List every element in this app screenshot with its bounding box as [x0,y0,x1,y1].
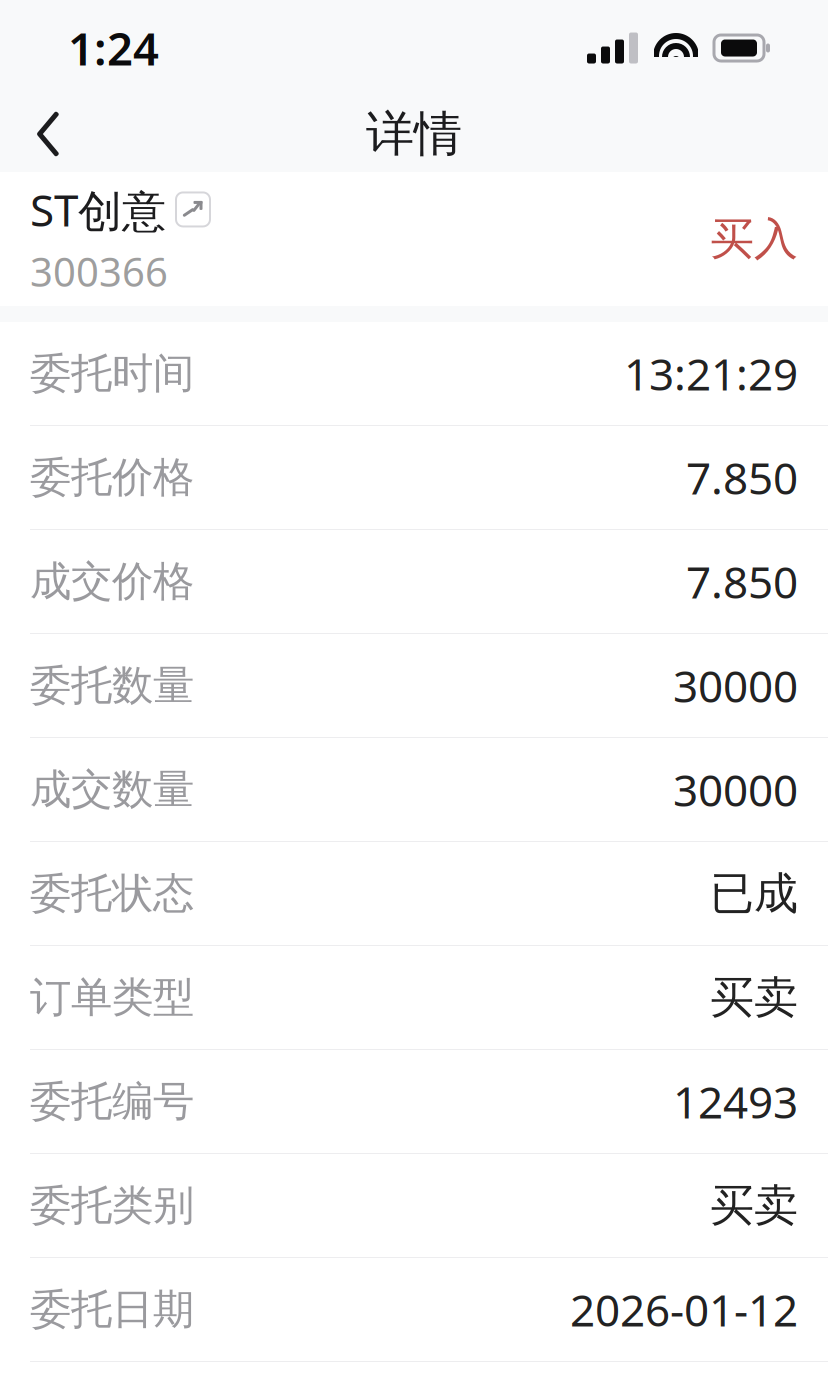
staticText: 买卖 [710,1178,798,1232]
staticText: 委托状态 [30,868,194,919]
staticText: 委托价格 [30,452,194,503]
staticText: 委托数量 [30,660,194,711]
staticText: 成交数量 [30,764,194,815]
staticText: 委托时间 [30,348,194,399]
staticText: 详情 [366,104,462,163]
staticText: 委托编号 [30,1076,194,1127]
staticText: 300366 [30,245,168,298]
staticText: 买卖 [710,970,798,1024]
staticText: 13:21:29 [624,344,798,403]
staticText: 1:24 [68,18,159,78]
staticText: 成交价格 [30,556,194,607]
staticText: 30000 [673,760,798,819]
staticText: 委托日期 [30,1284,194,1335]
staticText: ST创意 [30,180,166,239]
staticText: 7.850 [686,552,798,611]
staticText: 订单类型 [30,972,194,1023]
button[interactable]: 返回 [0,96,96,172]
staticText: 已成 [710,866,798,920]
staticText: 12493 [673,1072,798,1131]
staticText: 30000 [673,656,798,715]
staticText: 7.850 [686,448,798,507]
staticText: 2026-01-12 [570,1280,798,1339]
staticText: 买入 [710,212,798,266]
staticText: 委托类别 [30,1180,194,1231]
